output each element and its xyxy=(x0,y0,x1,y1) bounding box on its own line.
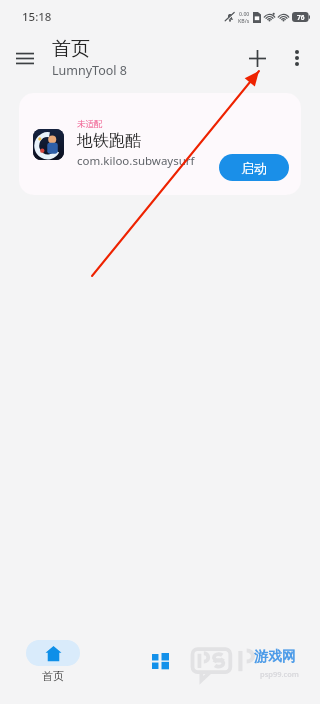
staticText: 首页 xyxy=(42,669,64,683)
button[interactable]: 未适配 xyxy=(19,93,301,195)
staticText: KB/s xyxy=(238,17,250,24)
staticText: 15:18 xyxy=(22,9,52,25)
staticText: psp99.com xyxy=(260,669,299,679)
button[interactable]: Menu xyxy=(8,41,42,75)
staticText: 未适配 xyxy=(77,119,103,130)
staticText: LumnyTool 8 xyxy=(52,62,127,79)
staticText: 首页 xyxy=(52,37,90,61)
staticText: 地铁跑酷 xyxy=(77,131,141,151)
button[interactable]: 启动 xyxy=(219,154,289,181)
staticText: 游戏网 xyxy=(254,648,296,666)
button[interactable]: 首页 xyxy=(16,640,90,683)
staticText: 启动 xyxy=(241,160,267,176)
button[interactable]: More options xyxy=(277,38,317,78)
button[interactable]: Add xyxy=(237,38,277,78)
staticText: 76 xyxy=(297,13,305,22)
staticText: com.kiloo.subwaysurf xyxy=(77,153,195,169)
button[interactable]: Apps xyxy=(133,639,187,683)
staticText: 0.00 xyxy=(239,10,250,17)
